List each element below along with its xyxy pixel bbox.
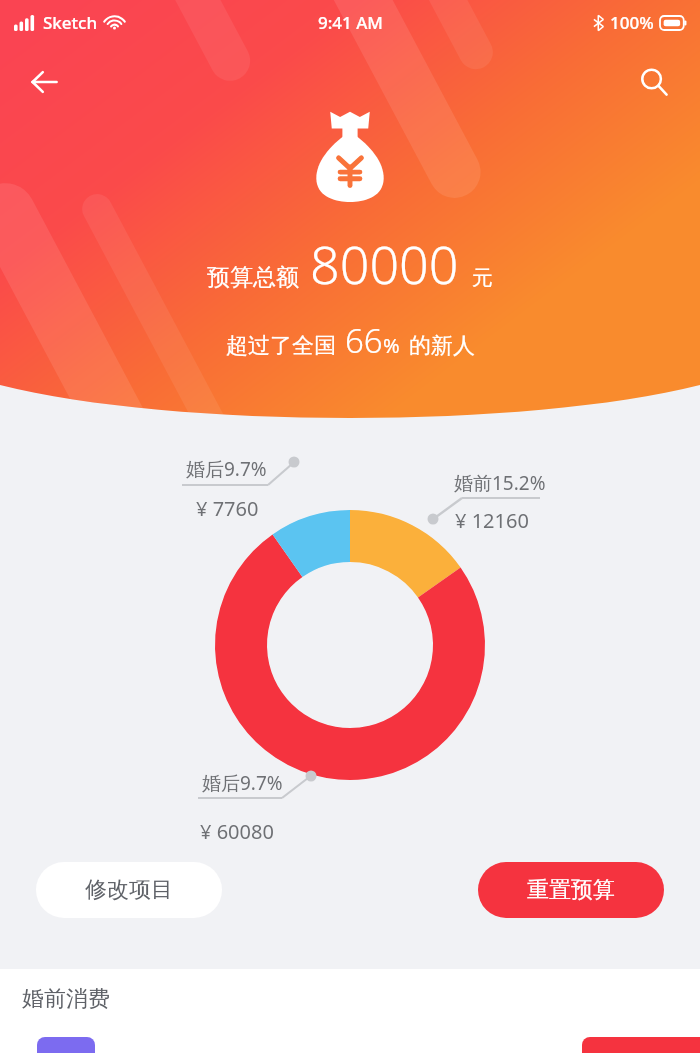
- staticText: 66: [345, 318, 383, 363]
- staticText: ¥ 7760: [196, 495, 259, 522]
- staticText: 婚前消费: [22, 985, 110, 1013]
- button[interactable]: Back: [16, 54, 72, 110]
- staticText: 修改项目: [85, 876, 173, 904]
- staticText: ¥ 12160: [455, 507, 529, 534]
- staticText: 9:41 AM: [318, 11, 383, 34]
- staticText: 超过了全国: [226, 332, 336, 360]
- staticText: 的新人: [409, 332, 475, 360]
- staticText: Sketch: [43, 11, 98, 34]
- staticText: 预算总额: [207, 263, 299, 292]
- staticText: 婚后9.7%: [186, 456, 267, 482]
- staticText: ¥ 60080: [200, 818, 274, 845]
- button[interactable]: 修改项目: [36, 862, 222, 918]
- staticText: 婚后9.7%: [202, 770, 283, 796]
- staticText: 100%: [610, 11, 654, 34]
- button[interactable]: [37, 1037, 95, 1053]
- staticText: 80000: [310, 228, 459, 299]
- button[interactable]: Search: [626, 54, 682, 110]
- button[interactable]: 重置预算: [478, 862, 664, 918]
- staticText: %: [383, 332, 400, 359]
- staticText: 婚前15.2%: [454, 470, 546, 496]
- staticText: 重置预算: [527, 876, 615, 904]
- button[interactable]: [582, 1037, 700, 1053]
- staticText: 元: [472, 265, 493, 291]
